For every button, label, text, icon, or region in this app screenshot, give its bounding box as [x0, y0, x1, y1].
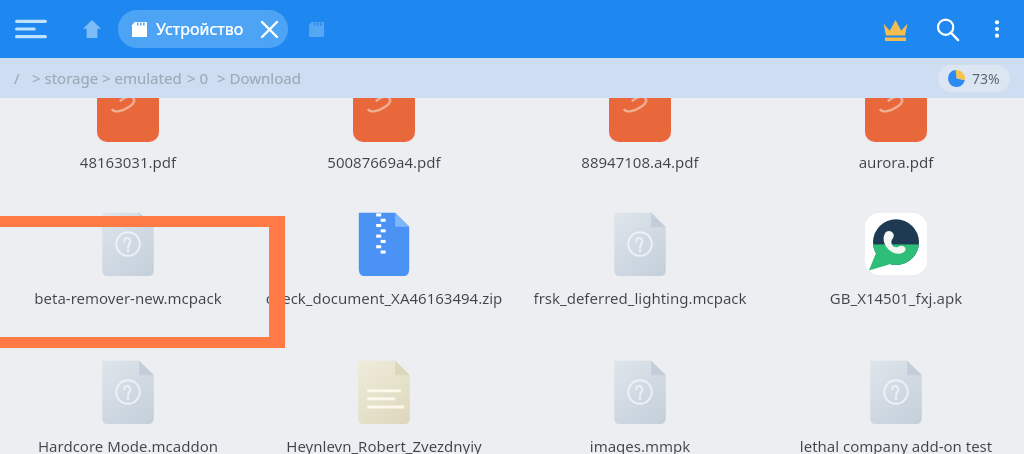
button[interactable]: lethal company add-on test	[768, 354, 1024, 454]
button[interactable]: Menu	[4, 2, 58, 56]
staticText: frsk_deferred_lighting.mcpack	[516, 288, 764, 308]
staticText: beta-remover-new.mcpack	[4, 288, 252, 308]
button[interactable]: Second tab	[296, 9, 336, 49]
staticText: check_document_XA46163494.zip	[260, 288, 508, 308]
button[interactable]: check_document_XA46163494.zip	[256, 206, 512, 332]
button[interactable]: Heynlevn_Robert_Zvezdnyiy	[256, 354, 512, 454]
staticText: > storage	[32, 68, 99, 88]
staticText: Hardcore Mode.mcaddon	[4, 436, 252, 454]
button[interactable]: Устройство	[118, 10, 288, 48]
button[interactable]: beta-remover-new.mcpack	[0, 206, 256, 332]
button[interactable]: images.mmpk	[512, 354, 768, 454]
button[interactable]: Premium	[870, 4, 920, 54]
staticText: images.mmpk	[516, 436, 764, 454]
button[interactable]: Search	[920, 2, 974, 56]
staticText: Heynlevn_Robert_Zvezdnyiy	[260, 436, 508, 454]
staticText: > emulated	[102, 68, 182, 88]
button[interactable]: More options	[974, 6, 1020, 52]
staticText: aurora.pdf	[772, 152, 1020, 172]
button[interactable]: 73%	[948, 65, 1000, 92]
staticText: /	[14, 68, 20, 88]
button[interactable]: aurora.pdf	[768, 98, 1024, 172]
staticText: > Download	[217, 68, 301, 88]
staticText: 48163031.pdf	[4, 152, 252, 172]
button[interactable]: Home	[68, 5, 116, 53]
staticText: > 0	[187, 68, 209, 88]
staticText: lethal company add-on test	[772, 436, 1020, 454]
button[interactable]: 50087669a4.pdf	[256, 98, 512, 172]
staticText: Устройство	[156, 18, 244, 40]
staticText: GB_X14501_fxj.apk	[772, 288, 1020, 308]
staticText: 73%	[972, 69, 1000, 88]
staticText: 50087669a4.pdf	[260, 152, 508, 172]
button[interactable]: frsk_deferred_lighting.mcpack	[512, 206, 768, 332]
button[interactable]: /	[14, 68, 301, 88]
button[interactable]: Hardcore Mode.mcaddon	[0, 354, 256, 454]
button[interactable]: 88947108.a4.pdf	[512, 98, 768, 172]
button[interactable]: GB_X14501_fxj.apk	[768, 206, 1024, 332]
button[interactable]: Close tab	[253, 13, 285, 45]
button[interactable]: 48163031.pdf	[0, 98, 256, 172]
staticText: 88947108.a4.pdf	[516, 152, 764, 172]
